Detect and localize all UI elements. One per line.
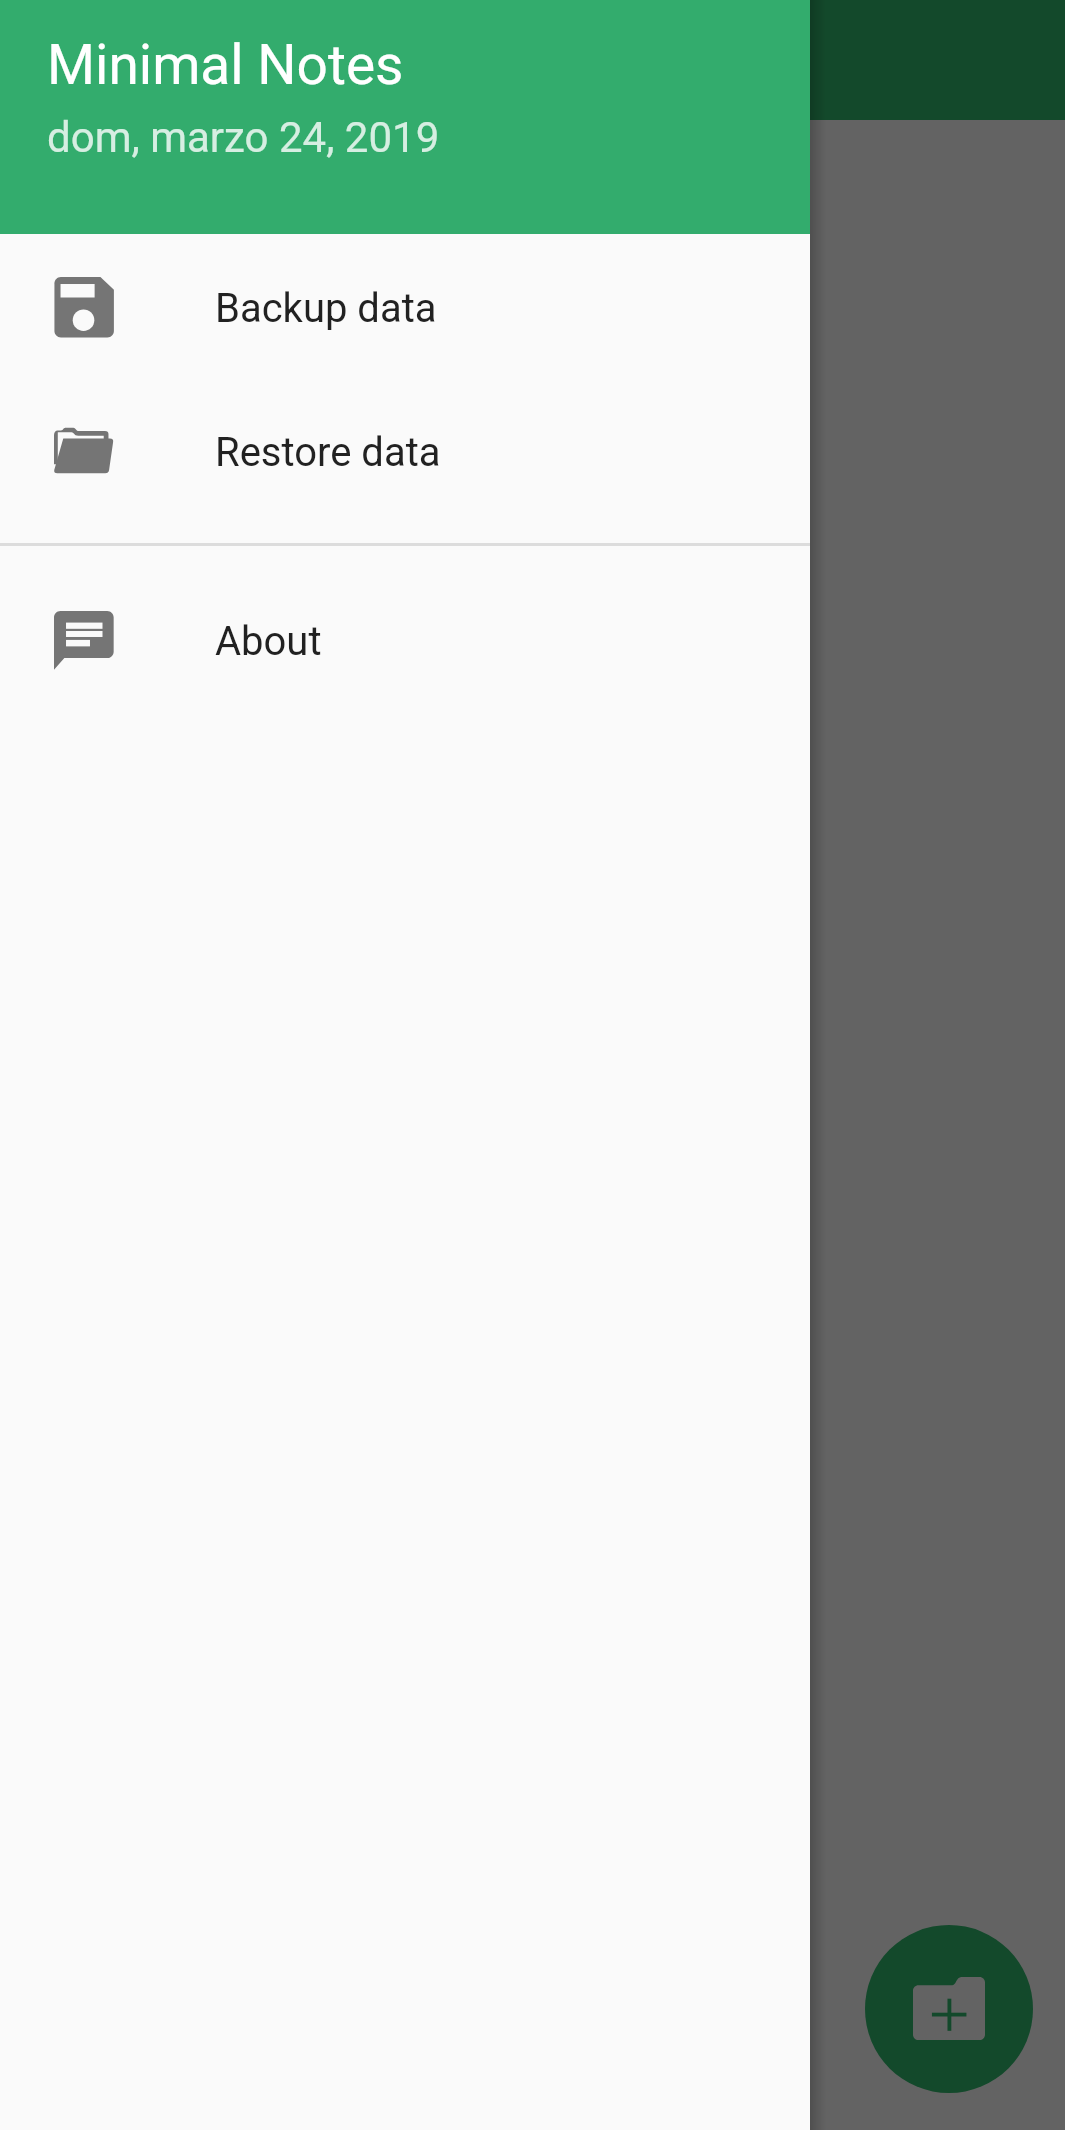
staticText: Backup data bbox=[215, 285, 437, 332]
button[interactable]: Backup data bbox=[0, 236, 810, 380]
button[interactable]: Restore data bbox=[0, 380, 810, 524]
staticText: About bbox=[215, 618, 322, 665]
button[interactable]: Close navigation drawer bbox=[810, 0, 1065, 2130]
button[interactable]: Create new note bbox=[865, 1925, 1033, 2093]
button[interactable]: About bbox=[0, 569, 810, 713]
staticText: dom, marzo 24, 2019 bbox=[47, 113, 440, 162]
staticText: Restore data bbox=[215, 429, 441, 476]
staticText: Minimal Notes bbox=[47, 33, 404, 97]
